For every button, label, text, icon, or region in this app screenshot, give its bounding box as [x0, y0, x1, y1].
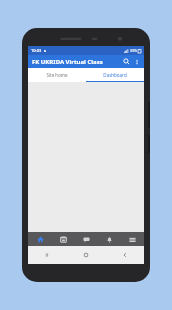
- staticText: Site home: [46, 72, 68, 78]
- staticText: FK UKRIDA Virtual Class: [32, 58, 103, 66]
- button[interactable]: Recents: [28, 246, 66, 264]
- staticText: 33%: [130, 48, 137, 53]
- button[interactable]: Menu: [121, 232, 144, 246]
- button[interactable]: Messages: [75, 232, 98, 246]
- button[interactable]: Notifications: [98, 232, 121, 246]
- button[interactable]: Home: [28, 232, 52, 246]
- staticText: Dashboard: [103, 72, 127, 78]
- button[interactable]: Home: [66, 246, 105, 264]
- button[interactable]: Search: [121, 56, 132, 67]
- button[interactable]: Calendar: [52, 232, 75, 246]
- button[interactable]: More options: [132, 57, 141, 66]
- button[interactable]: Back: [105, 246, 144, 264]
- button[interactable]: Site home: [28, 68, 86, 81]
- staticText: 10:03: [31, 48, 42, 53]
- button[interactable]: Dashboard: [86, 68, 144, 81]
